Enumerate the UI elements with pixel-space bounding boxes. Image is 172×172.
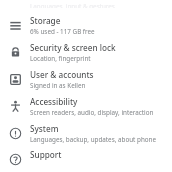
button[interactable]: Storage — [0, 12, 172, 39]
staticText: 6% used - 117 GB free — [30, 27, 95, 36]
button[interactable]: System — [0, 120, 172, 147]
staticText: System — [30, 123, 59, 134]
button[interactable]: Security & screen lock — [0, 39, 172, 66]
staticText: Screen readers, audio, display, interact… — [30, 108, 170, 117]
staticText: Support — [30, 149, 62, 160]
button[interactable]: Support — [0, 147, 172, 172]
other: Accessibility — [9, 100, 22, 113]
staticText: Security & screen lock — [30, 42, 116, 53]
button[interactable]: Accessibility — [0, 93, 172, 120]
other: User & accounts — [9, 73, 22, 86]
staticText: Accessibility — [30, 96, 78, 107]
staticText: User & accounts — [30, 69, 94, 80]
staticText: Location, fingerprint — [30, 54, 91, 63]
button[interactable]: User & accounts — [0, 66, 172, 93]
staticText: Storage — [30, 15, 61, 26]
other: Support — [9, 153, 22, 166]
other: Storage — [9, 19, 22, 32]
staticText: Signed in as Kellen — [30, 81, 86, 90]
staticText: Languages, input & gestures — [30, 2, 115, 8]
staticText: Languages, backup, updates, about phone — [30, 135, 157, 144]
other: System — [9, 127, 22, 140]
other: Security & screen lock — [9, 46, 22, 59]
